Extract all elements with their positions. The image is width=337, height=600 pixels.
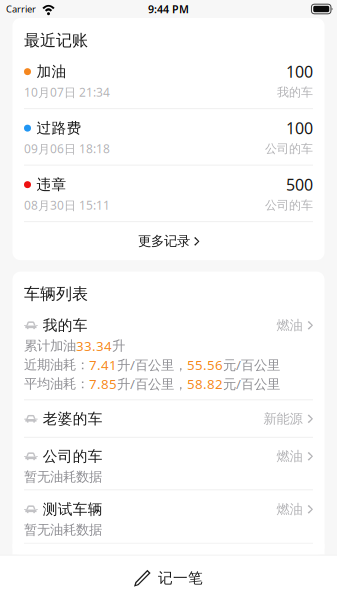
staticText: 公司的车 [265, 198, 313, 212]
staticText: 33.34 [76, 337, 112, 355]
staticText: 09月06日 18:18 [24, 141, 110, 157]
staticText: Carrier [6, 3, 36, 15]
staticText: 9:44 PM [148, 2, 189, 16]
staticText: 老婆的车 [43, 410, 103, 428]
button[interactable]: 加油 [12, 53, 324, 108]
staticText: 记一笔 [158, 569, 203, 587]
staticText: 7.85 [89, 375, 117, 393]
button[interactable]: 老婆的车 [12, 400, 324, 437]
staticText: 暂无油耗数据 [24, 469, 102, 485]
button[interactable]: 测试车辆 [12, 490, 324, 543]
button[interactable]: 公司的车 [12, 438, 324, 489]
button[interactable]: 更多记录 [12, 222, 324, 260]
staticText: 过路费 [36, 119, 81, 137]
staticText: 最近记账 [24, 30, 88, 50]
staticText: 元/百公里 [223, 356, 280, 374]
staticText: 公司的车 [43, 447, 103, 465]
staticText: 7.41 [89, 356, 117, 374]
staticText: 10月07日 21:34 [24, 84, 110, 100]
staticText: 升/百公里， [117, 375, 187, 393]
staticText: 元/百公里 [223, 375, 280, 393]
staticText: 新能源 [264, 411, 303, 427]
staticText: 近期油耗： [24, 357, 89, 373]
staticText: 55.56 [187, 356, 223, 374]
staticText: 暂无油耗数据 [24, 522, 102, 538]
button[interactable]: 过路费 [12, 109, 324, 165]
staticText: 燃油 [277, 317, 303, 333]
button[interactable]: 记一笔 [0, 555, 337, 600]
staticText: 累计加油 [24, 338, 76, 354]
staticText: 升/百公里， [117, 356, 187, 374]
staticText: 100 [286, 117, 313, 139]
staticText: 车辆列表 [24, 284, 88, 304]
staticText: 公司的车 [265, 141, 313, 156]
staticText: 平均油耗： [24, 376, 89, 392]
staticText: 更多记录 [138, 233, 190, 249]
staticText: 升 [112, 338, 125, 354]
button[interactable]: 违章 [12, 166, 324, 221]
button[interactable]: 我的车 [12, 306, 324, 399]
staticText: 58.82 [187, 375, 223, 393]
staticText: 燃油 [277, 501, 303, 517]
staticText: 100 [286, 61, 313, 82]
staticText: 我的车 [43, 316, 88, 334]
staticText: 加油 [36, 63, 66, 81]
staticText: 500 [286, 174, 313, 195]
staticText: 08月30日 15:11 [24, 197, 110, 213]
staticText: 燃油 [277, 448, 303, 464]
staticText: 我的车 [277, 85, 313, 99]
staticText: 测试车辆 [43, 500, 103, 518]
staticText: 违章 [36, 176, 66, 194]
